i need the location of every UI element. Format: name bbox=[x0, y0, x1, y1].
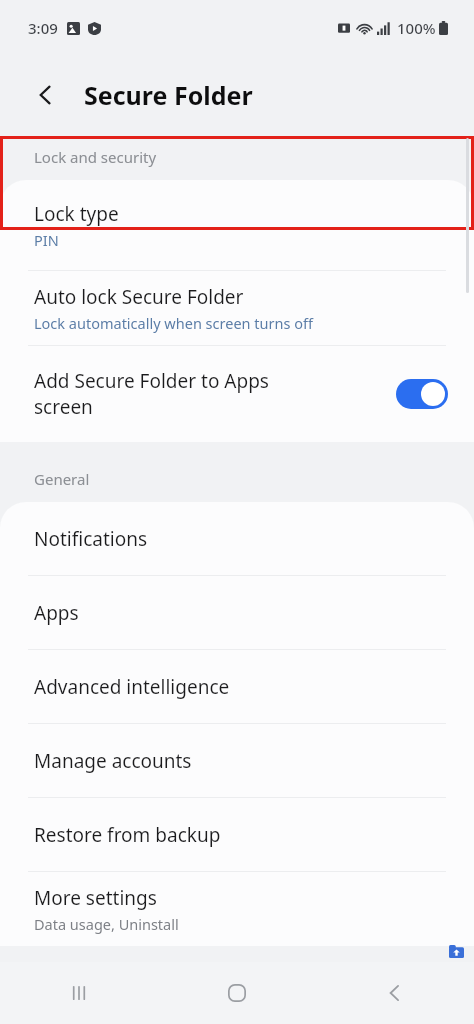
button[interactable]: Manage accounts bbox=[0, 724, 474, 797]
button[interactable]: Notifications bbox=[0, 502, 474, 575]
button[interactable]: Add Secure Folder to Apps bbox=[0, 346, 474, 442]
staticText: Lock type bbox=[34, 201, 119, 227]
button[interactable]: Home bbox=[158, 962, 316, 1024]
staticText: Notifications bbox=[34, 526, 148, 552]
button[interactable]: Apps bbox=[0, 576, 474, 649]
button[interactable]: Restore from backup bbox=[0, 798, 474, 871]
button[interactable]: Back bbox=[316, 962, 474, 1024]
staticText: Advanced intelligence bbox=[34, 674, 230, 700]
staticText: Secure Folder bbox=[84, 78, 253, 112]
staticText: Data usage, Uninstall bbox=[34, 914, 179, 934]
staticText: PIN bbox=[34, 230, 59, 250]
staticText: Lock and security bbox=[34, 147, 157, 167]
staticText: 100% bbox=[397, 18, 436, 38]
button[interactable]: Auto lock Secure Folder bbox=[0, 271, 474, 345]
staticText: More settings bbox=[34, 885, 157, 911]
staticText: Auto lock Secure Folder bbox=[34, 284, 244, 310]
button[interactable]: Add Secure Folder to Apps screen toggle bbox=[396, 379, 448, 409]
staticText: 3:09 bbox=[28, 18, 58, 38]
button[interactable]: Lock type bbox=[0, 180, 474, 270]
button[interactable]: More settings bbox=[0, 872, 474, 946]
button[interactable]: Recents bbox=[0, 962, 158, 1024]
button[interactable]: Advanced intelligence bbox=[0, 650, 474, 723]
staticText: Apps bbox=[34, 600, 79, 626]
staticText: General bbox=[34, 469, 90, 489]
staticText: screen bbox=[34, 394, 93, 420]
staticText: Manage accounts bbox=[34, 748, 192, 774]
staticText: Restore from backup bbox=[34, 822, 221, 848]
button[interactable]: Back bbox=[26, 75, 66, 115]
staticText: Add Secure Folder to Apps bbox=[34, 368, 269, 394]
staticText: Lock automatically when screen turns off bbox=[34, 313, 313, 333]
